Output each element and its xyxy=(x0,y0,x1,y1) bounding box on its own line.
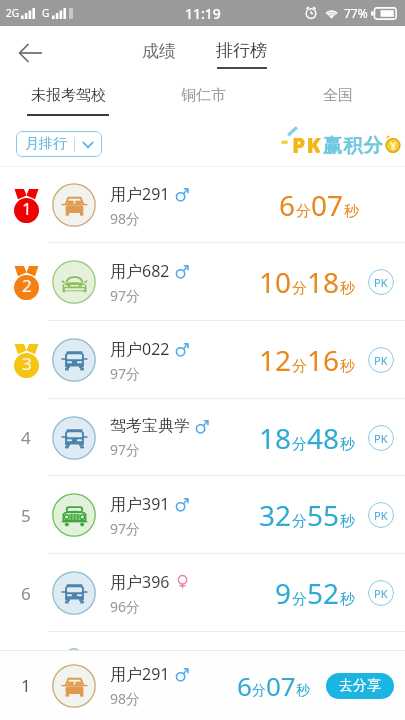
button[interactable]: Back xyxy=(6,29,54,77)
staticText: 去分享 xyxy=(339,677,381,695)
staticText: PK xyxy=(292,131,323,160)
staticText: 10 xyxy=(259,263,292,301)
staticText: 18 xyxy=(307,263,340,301)
staticText: 07 xyxy=(311,186,344,224)
staticText: 用户396 xyxy=(110,571,170,593)
staticText: 排行榜 xyxy=(216,40,267,61)
staticText: 12 xyxy=(259,341,292,379)
staticText: 用户022 xyxy=(110,338,170,360)
staticText: 分 xyxy=(292,512,307,531)
staticText: 6 xyxy=(21,582,31,605)
staticText: 驾考宝典学 xyxy=(110,416,190,436)
staticText: 32 xyxy=(259,496,292,534)
staticText: 分 xyxy=(292,279,307,298)
staticText: 55 xyxy=(307,496,340,534)
staticText: 分 xyxy=(292,357,307,376)
staticText: 48 xyxy=(307,419,340,457)
button[interactable]: 月排行 xyxy=(16,131,102,157)
staticText: 赢积分 xyxy=(323,134,384,158)
button[interactable]: 2 xyxy=(0,243,405,321)
staticText: PK xyxy=(374,508,388,523)
staticText: 6 xyxy=(237,668,252,703)
button[interactable]: 3 xyxy=(0,321,405,399)
staticText: 98分 xyxy=(110,689,141,708)
staticText: 赢积分 xyxy=(323,134,384,158)
button[interactable]: 未报考驾校 xyxy=(0,80,135,122)
staticText: 97分 xyxy=(110,519,141,538)
staticText: 97分 xyxy=(110,364,141,383)
button[interactable]: 铜仁市 xyxy=(135,80,270,122)
staticText: 秒 xyxy=(340,435,355,454)
staticText: 月排行 xyxy=(25,135,67,153)
staticText: PK xyxy=(292,131,323,160)
staticText: 秒 xyxy=(340,590,355,609)
button[interactable]: PK xyxy=(368,502,394,528)
button[interactable]: 成绩 xyxy=(128,35,190,68)
staticText: 98分 xyxy=(110,209,141,228)
staticText: 秒 xyxy=(344,202,359,221)
staticText: 用户391 xyxy=(110,493,170,515)
staticText: 16 xyxy=(307,341,340,379)
button[interactable]: PK赢积分 xyxy=(281,122,391,166)
button[interactable]: 5 xyxy=(0,476,405,554)
staticText: 11:19 xyxy=(185,4,221,23)
staticText: 1 xyxy=(22,197,32,220)
button[interactable]: 排行榜 xyxy=(206,34,277,69)
staticText: 未报考驾校 xyxy=(31,86,106,105)
staticText: PK xyxy=(374,431,388,446)
staticText: 4 xyxy=(21,426,31,449)
button[interactable]: 4 xyxy=(0,399,405,476)
button[interactable] xyxy=(0,632,405,650)
staticText: 全国 xyxy=(323,86,353,105)
button[interactable]: PK xyxy=(368,580,394,606)
staticText: 52 xyxy=(307,574,340,612)
button[interactable]: 1 xyxy=(0,167,405,243)
staticText: 分 xyxy=(252,682,266,700)
button[interactable]: 6 xyxy=(0,554,405,632)
staticText: 秒 xyxy=(340,512,355,531)
staticText: 07 xyxy=(266,668,296,703)
staticText: 分 xyxy=(292,435,307,454)
staticText: 秒 xyxy=(340,279,355,298)
staticText: G xyxy=(42,6,50,20)
staticText: PK xyxy=(374,353,388,368)
staticText: 3 xyxy=(22,352,32,375)
staticText: 用户291 xyxy=(110,663,170,685)
staticText: 用户291 xyxy=(110,183,170,205)
staticText: 秒 xyxy=(296,682,310,700)
staticText: 1 xyxy=(21,674,31,697)
staticText: 5 xyxy=(21,504,31,527)
staticText: 9 xyxy=(275,574,292,612)
staticText: 97分 xyxy=(110,440,141,459)
button[interactable]: PK xyxy=(368,269,394,295)
staticText: 77% xyxy=(344,5,368,21)
staticText: 96分 xyxy=(110,597,141,616)
button[interactable]: 去分享 xyxy=(326,673,394,699)
staticText: 分 xyxy=(296,202,311,221)
button[interactable]: PK xyxy=(368,425,394,451)
staticText: 2 xyxy=(22,274,32,297)
staticText: ¥ xyxy=(390,138,397,153)
staticText: 用户682 xyxy=(110,260,170,282)
staticText: 铜仁市 xyxy=(181,86,226,105)
staticText: PK xyxy=(374,586,388,601)
button[interactable]: PK xyxy=(368,347,394,373)
staticText: PK xyxy=(374,275,388,290)
staticText: 18 xyxy=(259,419,292,457)
staticText: 97分 xyxy=(110,286,141,305)
staticText: 分 xyxy=(292,590,307,609)
staticText: 成绩 xyxy=(142,41,176,62)
staticText: 6 xyxy=(279,186,296,224)
button[interactable]: 全国 xyxy=(270,80,405,122)
staticText: 秒 xyxy=(340,357,355,376)
staticText: 2G xyxy=(6,6,19,20)
